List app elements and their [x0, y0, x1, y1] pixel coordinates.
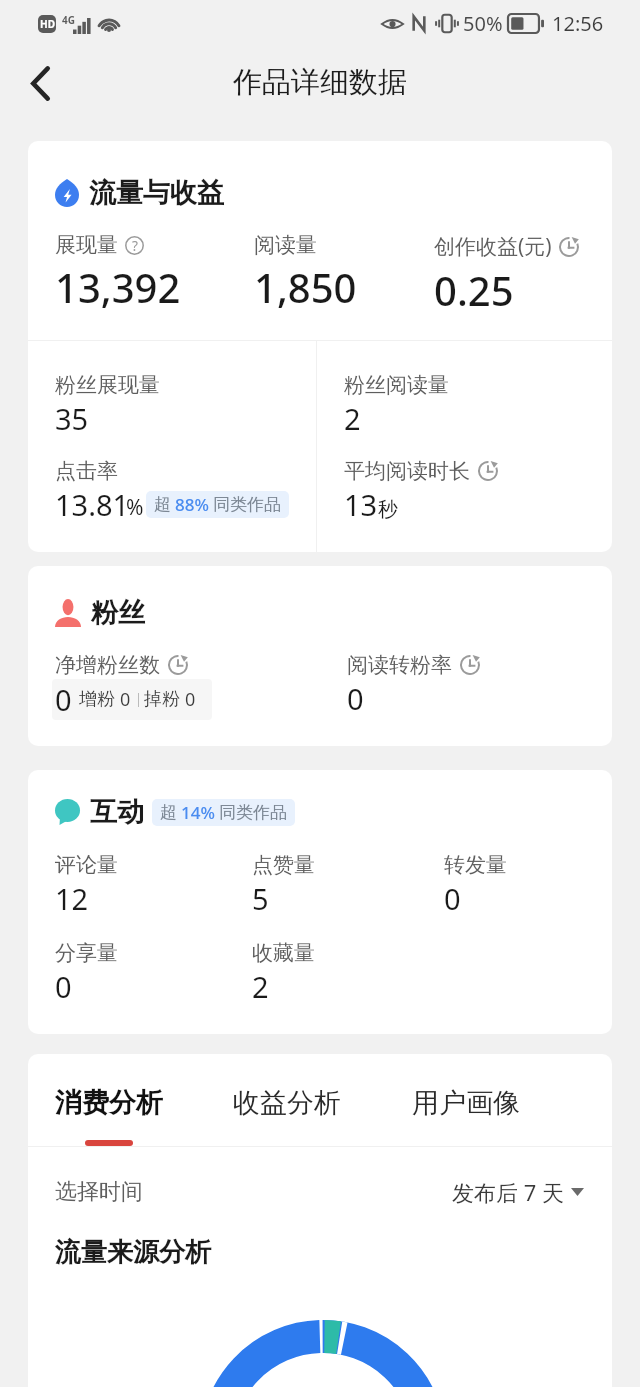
button[interactable]: 消费分析: [55, 1086, 163, 1146]
staticText: 分享量: [55, 940, 118, 966]
staticText: 13: [344, 485, 378, 524]
staticText: 转发量: [444, 852, 507, 878]
staticText: 12:56: [552, 10, 604, 37]
staticText: 消费分析: [55, 1086, 163, 1120]
staticText: 互动: [90, 795, 144, 829]
staticText: 掉粉: [144, 688, 180, 711]
staticText: 粉丝阅读量: [344, 372, 449, 398]
staticText: 1,850: [254, 260, 357, 314]
staticText: 2: [344, 399, 361, 438]
staticText: 作品详细数据: [233, 64, 407, 101]
staticText: 0: [55, 967, 72, 1006]
staticText: 4G: [62, 13, 75, 27]
staticText: 秒: [378, 497, 398, 522]
staticText: HD: [40, 17, 55, 31]
staticText: 选择时间: [55, 1178, 143, 1206]
staticText: 收藏量: [252, 940, 315, 966]
staticText: 5: [252, 879, 269, 918]
staticText: 88%: [175, 493, 209, 516]
staticText: 评论量: [55, 852, 118, 878]
staticText: 粉丝展现量: [55, 372, 160, 398]
staticText: 0: [185, 687, 196, 712]
button[interactable]: Back: [14, 61, 66, 113]
staticText: 0.25: [434, 263, 514, 317]
staticText: 50%: [463, 10, 503, 37]
staticText: 0: [55, 680, 72, 719]
staticText: 粉丝: [91, 596, 145, 630]
staticText: 超: [160, 802, 177, 823]
staticText: 创作收益(元): [434, 232, 552, 261]
staticText: 12: [55, 879, 89, 918]
staticText: ?: [132, 236, 138, 255]
staticText: 13,392: [55, 260, 181, 314]
button[interactable]: 收益分析: [233, 1086, 341, 1146]
staticText: 同类作品: [213, 494, 281, 515]
staticText: 增粉: [79, 688, 115, 711]
staticText: 同类作品: [219, 802, 287, 823]
staticText: 净增粉丝数: [55, 652, 160, 678]
staticText: 0: [444, 879, 461, 918]
staticText: 14%: [181, 801, 215, 824]
staticText: 0: [120, 687, 131, 712]
button[interactable]: 发布后 7 天: [452, 1177, 584, 1207]
staticText: 发布后 7 天: [452, 1177, 565, 1207]
staticText: 阅读量: [254, 232, 317, 258]
staticText: 阅读转粉率: [347, 652, 452, 678]
staticText: 13.81: [55, 485, 130, 524]
staticText: 超: [154, 494, 171, 515]
staticText: 2: [252, 967, 269, 1006]
staticText: 35: [55, 399, 89, 438]
staticText: %: [126, 493, 144, 522]
staticText: 平均阅读时长: [344, 458, 470, 484]
staticText: 收益分析: [233, 1086, 341, 1120]
staticText: 用户画像: [412, 1086, 520, 1120]
staticText: 点赞量: [252, 852, 315, 878]
staticText: 流量来源分析: [55, 1236, 211, 1269]
staticText: 0: [347, 679, 364, 718]
staticText: 流量与收益: [89, 176, 224, 210]
staticText: 点击率: [55, 458, 118, 484]
staticText: 展现量: [55, 232, 118, 258]
button[interactable]: 用户画像: [412, 1086, 520, 1146]
